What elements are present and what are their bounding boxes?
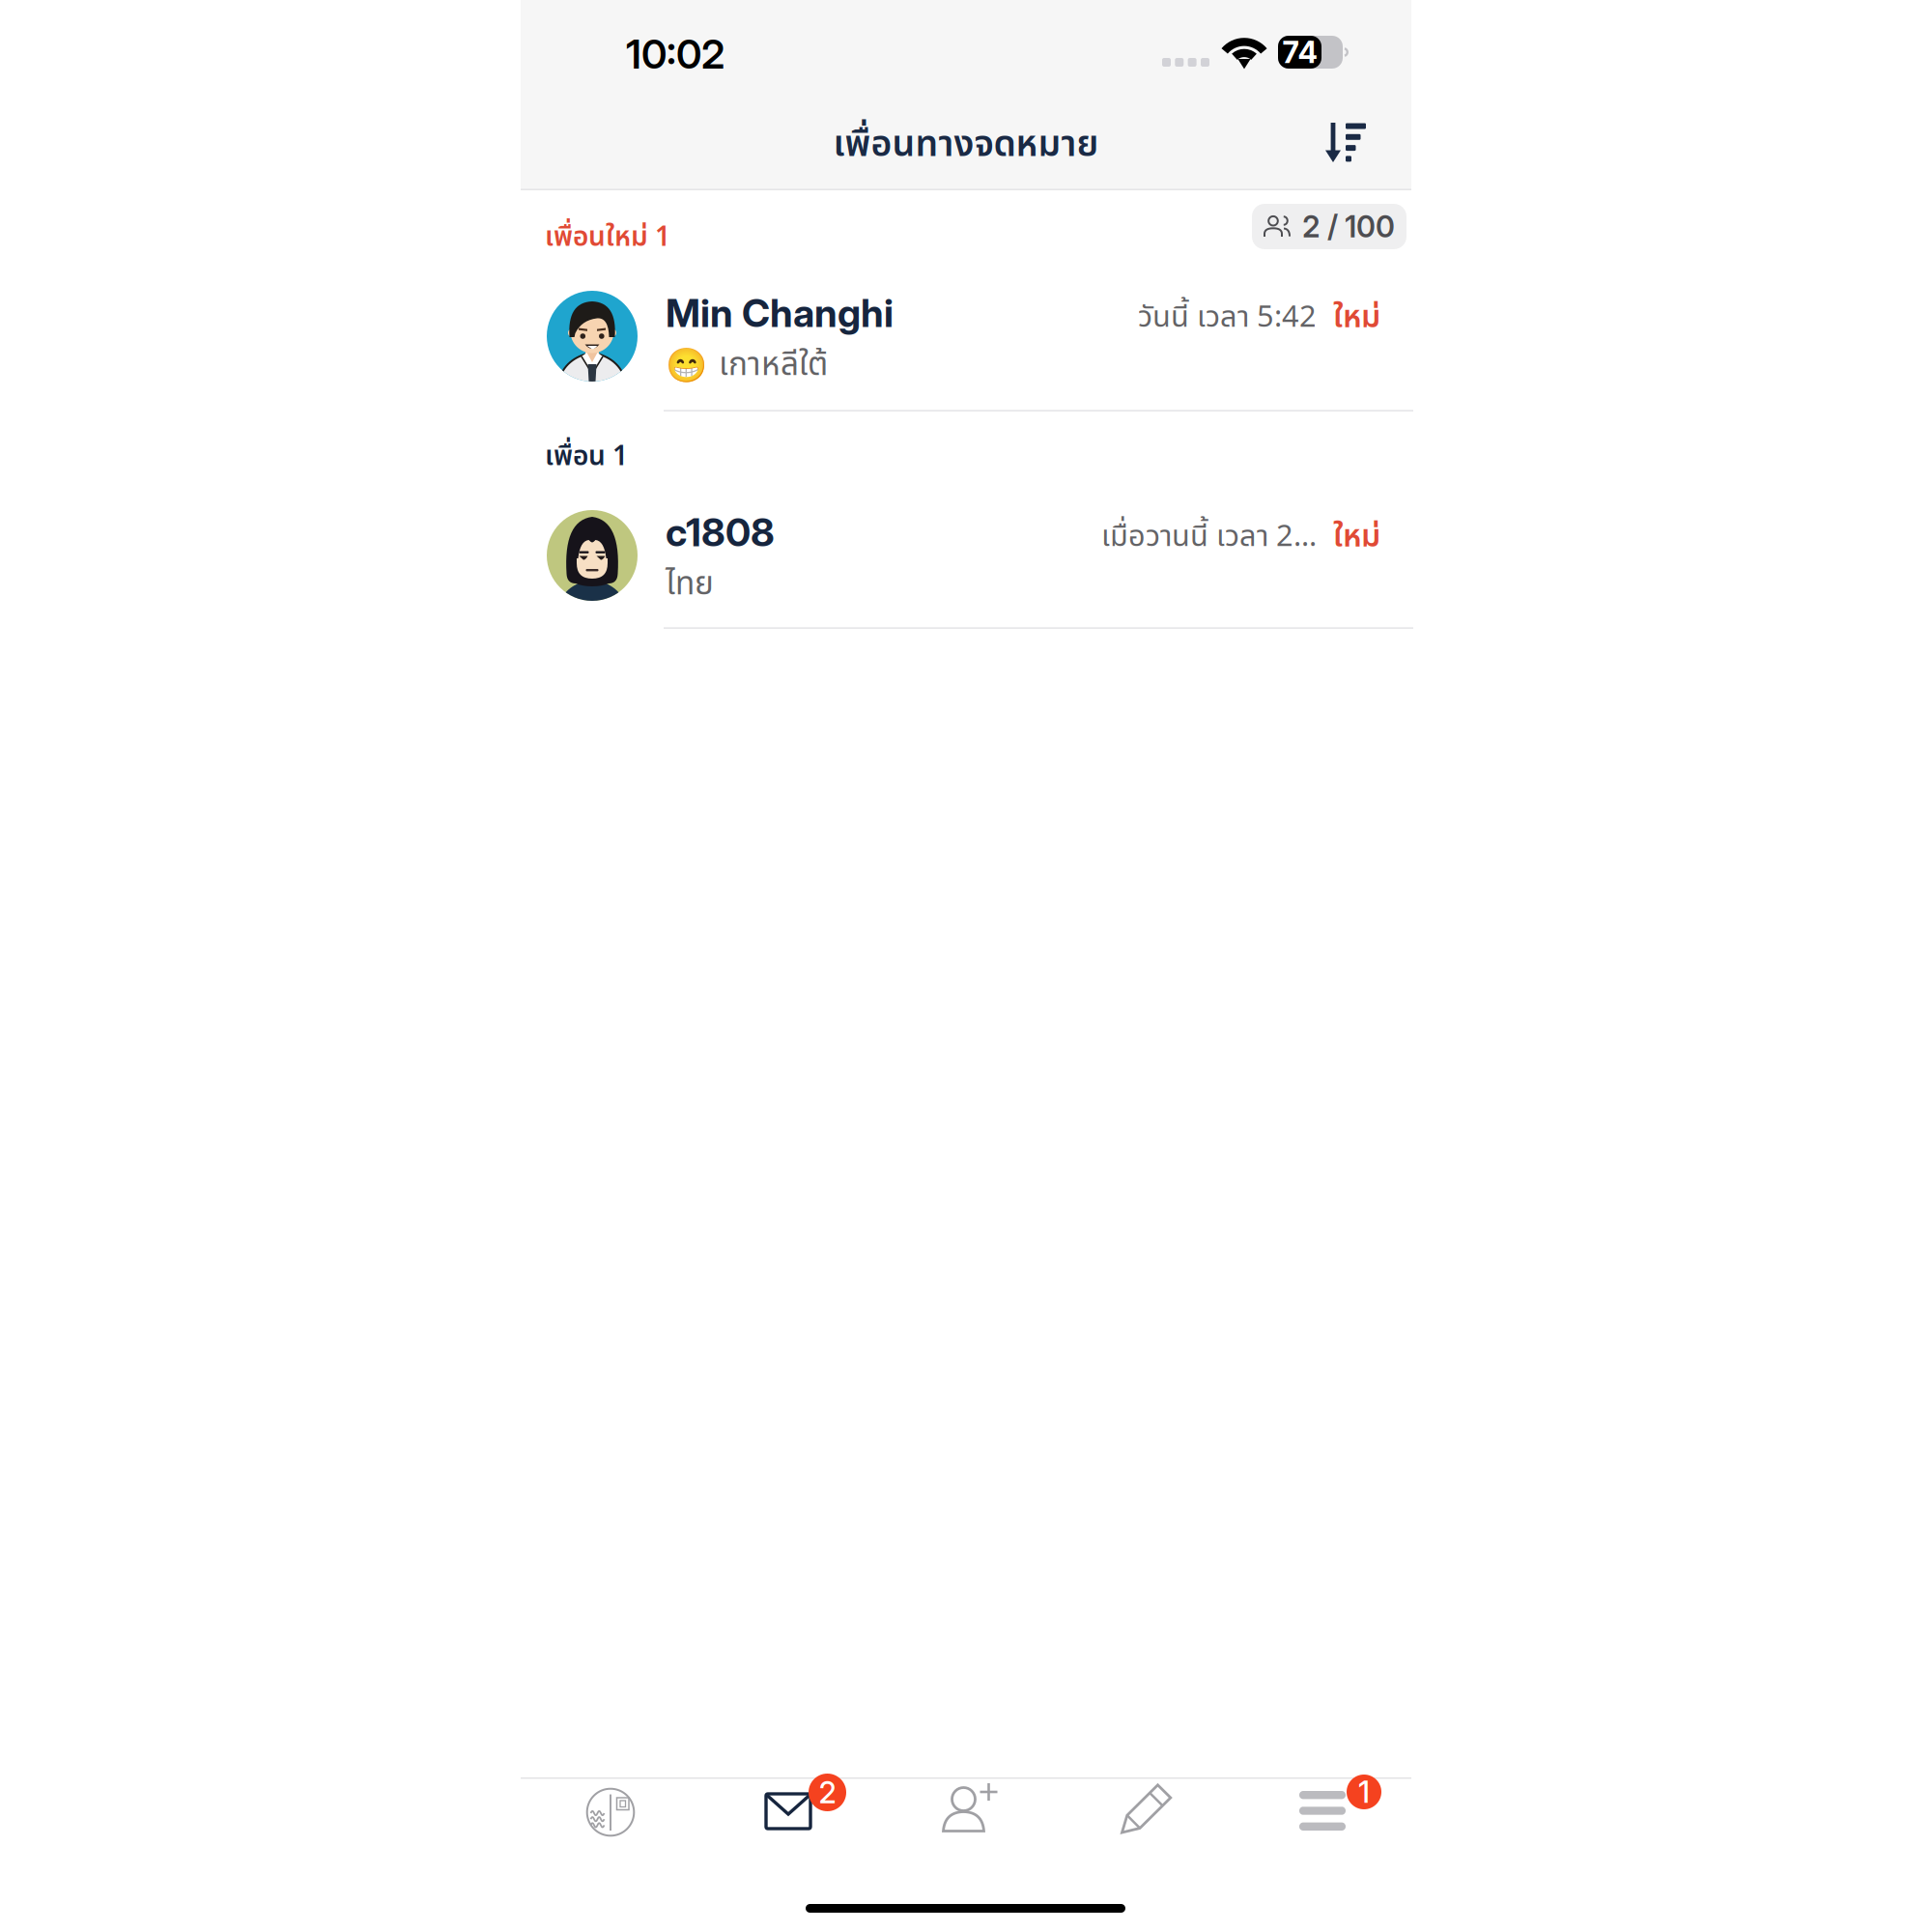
button[interactable]: c1808 (521, 499, 1411, 629)
staticText: ไทย (666, 560, 714, 609)
staticText: เพื่อน 1 (545, 436, 628, 477)
staticText: เพื่อนใหม่ 1 (545, 217, 670, 258)
staticText: เมื่อวานนี้ เวลา 2... (1101, 515, 1317, 559)
button[interactable]: Sort (1302, 99, 1389, 186)
staticText: 😁 (666, 346, 707, 385)
staticText: 2 (819, 1774, 836, 1810)
staticText: 2 / 100 (1302, 209, 1395, 244)
button[interactable]: Mail (698, 1779, 876, 1903)
staticText: c1808 (666, 509, 775, 556)
staticText: ใหม่ (1333, 294, 1380, 341)
staticText: เพื่อนทางจดหมาย (833, 118, 1099, 172)
button[interactable]: Add friend (877, 1779, 1055, 1903)
staticText: 1 (1358, 1774, 1370, 1810)
staticText: 74 (1282, 34, 1317, 70)
staticText: วันนี้ เวลา 5:42 (1138, 295, 1317, 340)
button[interactable]: Min Changhi (521, 280, 1411, 412)
staticText: เกาหลีใต้ (719, 341, 828, 389)
staticText: Min Changhi (666, 290, 894, 336)
button[interactable]: Compose (1055, 1779, 1233, 1903)
staticText: 10:02 (626, 30, 724, 78)
staticText: ใหม่ (1333, 514, 1380, 560)
button[interactable]: Postcards (521, 1779, 698, 1903)
button[interactable]: 2 / 100 (1252, 204, 1406, 249)
button[interactable]: Menu (1234, 1779, 1411, 1903)
